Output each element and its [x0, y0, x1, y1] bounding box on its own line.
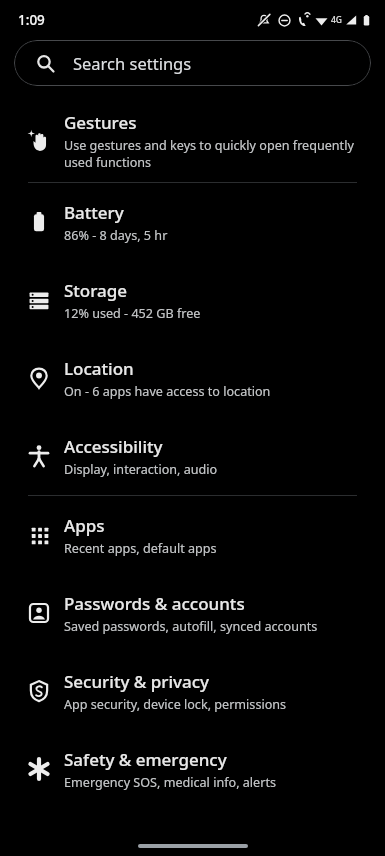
staticText: Accessibility [64, 435, 163, 458]
other: Storage [28, 289, 50, 311]
staticText: Saved passwords, autofill, synced accoun… [64, 618, 318, 635]
staticText: Apps [64, 514, 105, 537]
other: Battery [28, 211, 50, 233]
staticText: Location [64, 357, 134, 380]
staticText: 1:09 [18, 11, 45, 29]
button[interactable]: Search [14, 40, 371, 86]
other: Safety and emergency [28, 758, 50, 780]
staticText: On - 6 apps have access to location [64, 383, 271, 400]
button[interactable]: Security and privacy [0, 652, 385, 730]
other: Apps [28, 524, 50, 546]
other: Location [28, 367, 50, 389]
button[interactable]: Accessibility [0, 417, 385, 495]
button[interactable]: Passwords and accounts [0, 574, 385, 652]
staticText: Use gestures and keys to quickly open fr… [64, 137, 354, 170]
button[interactable]: Battery [0, 183, 385, 261]
other: Search [36, 54, 55, 73]
staticText: Storage [64, 279, 128, 302]
staticText: Battery [64, 201, 124, 224]
staticText: 86% - 8 days, 5 hr [64, 227, 168, 244]
button[interactable]: Storage [0, 261, 385, 339]
staticText: 4G [331, 14, 343, 26]
button[interactable]: Gestures [0, 98, 385, 182]
staticText: 12% used - 452 GB free [64, 305, 201, 322]
button[interactable]: Safety and emergency [0, 730, 385, 808]
staticText: Passwords & accounts [64, 592, 245, 615]
staticText: Search settings [73, 52, 192, 74]
button[interactable]: Location [0, 339, 385, 417]
button[interactable]: Apps [0, 496, 385, 574]
staticText: Gestures [64, 111, 137, 134]
staticText: Emergency SOS, medical info, alerts [64, 774, 276, 791]
staticText: Display, interaction, audio [64, 461, 218, 478]
other: Gestures [28, 129, 50, 151]
other: Accessibility [28, 445, 50, 467]
other: Passwords and accounts [28, 602, 50, 624]
staticText: App security, device lock, permissions [64, 696, 287, 713]
other: Security and privacy [28, 680, 50, 702]
staticText: Recent apps, default apps [64, 540, 217, 557]
staticText: Security & privacy [64, 670, 210, 693]
staticText: Safety & emergency [64, 748, 227, 771]
